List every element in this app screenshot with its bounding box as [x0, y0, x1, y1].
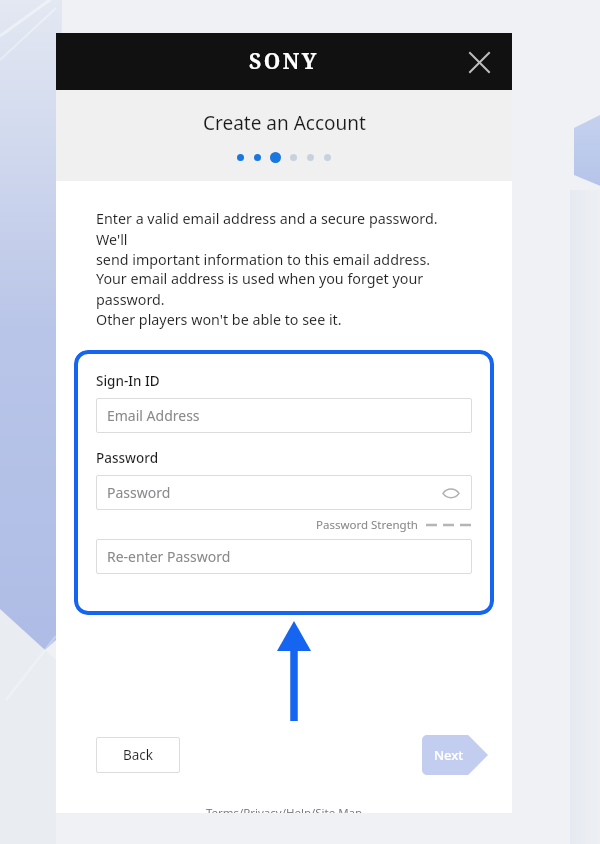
button[interactable]: Next	[422, 735, 488, 775]
staticText: Enter a valid email address and a secure…	[96, 209, 472, 250]
staticText: send important information to this email…	[96, 250, 431, 269]
staticText: Sign-In ID	[96, 372, 160, 390]
staticText: Password	[107, 483, 171, 502]
staticText: Other players won't be able to see it.	[96, 310, 342, 329]
staticText: Email Address	[107, 406, 200, 425]
button[interactable]: Back	[96, 737, 180, 773]
staticText: Back	[123, 746, 154, 764]
staticText: SONY	[249, 47, 319, 76]
button[interactable]: Email Address	[96, 398, 472, 433]
staticText: Password Strength	[316, 517, 418, 533]
staticText: Create an Account	[203, 110, 366, 136]
staticText: Your email address is used when you forg…	[96, 269, 472, 310]
staticText: Terms/Privacy/Help/Site Map	[56, 805, 512, 813]
button[interactable]: Re-enter Password	[96, 539, 472, 574]
staticText: Next	[434, 746, 464, 764]
button[interactable]: Show password	[440, 482, 462, 504]
staticText: Re-enter Password	[107, 547, 231, 566]
button[interactable]: Close	[462, 45, 496, 79]
button[interactable]: Password	[96, 475, 472, 510]
staticText: Password	[96, 449, 159, 467]
